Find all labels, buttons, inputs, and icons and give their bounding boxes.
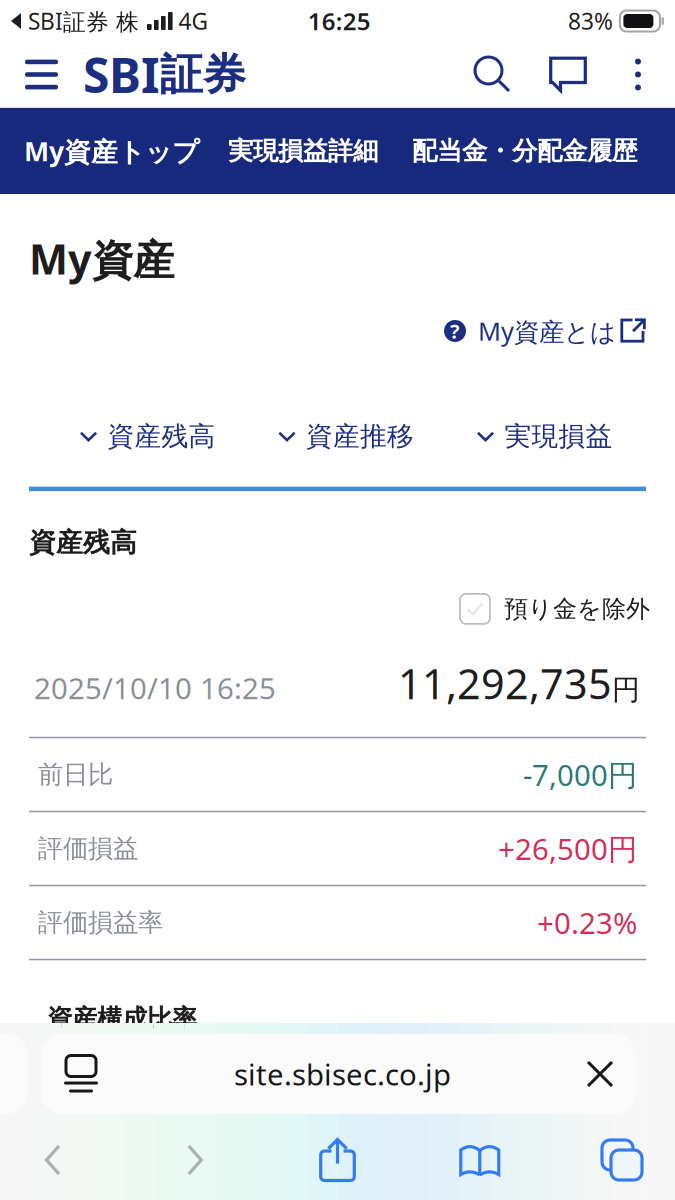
button[interactable]: Chat xyxy=(520,42,617,107)
button[interactable]: 実現損益 xyxy=(476,420,612,453)
staticText: 預り金を除外 xyxy=(504,594,650,624)
staticText: 83% xyxy=(568,6,613,36)
staticText: 配当金・分配金履歴 xyxy=(412,135,637,166)
staticText: 評価損益 xyxy=(38,833,138,864)
button[interactable]: Forward xyxy=(142,1129,248,1191)
button[interactable]: More options xyxy=(617,42,663,107)
button[interactable]: Back xyxy=(0,1129,106,1191)
button[interactable]: 預り金を除外 xyxy=(460,594,650,624)
button[interactable]: 資産残高 xyxy=(79,420,215,453)
button[interactable]: ? xyxy=(444,314,646,348)
staticText: ? xyxy=(450,318,460,344)
staticText: 資産構成比率 xyxy=(47,1003,197,1034)
staticText: 評価損益率 xyxy=(38,907,163,938)
staticText: My資産 xyxy=(29,231,174,286)
staticText: site.sbisec.co.jp xyxy=(234,1054,451,1093)
staticText: 前日比 xyxy=(38,759,113,790)
button[interactable]: 資産推移 xyxy=(278,420,414,453)
button[interactable]: Share xyxy=(284,1129,390,1191)
staticText: 実現損益 xyxy=(504,420,612,453)
button[interactable]: Page settings xyxy=(41,1034,115,1114)
button[interactable]: Bookmarks xyxy=(427,1129,533,1191)
staticText: 実現損益詳細 xyxy=(228,135,378,166)
button[interactable]: Menu xyxy=(12,42,71,107)
button[interactable]: 実現損益詳細 xyxy=(214,108,394,194)
staticText: 16:25 xyxy=(308,5,371,37)
staticText: 2025/10/10 16:25 xyxy=(34,668,276,707)
button[interactable]: SBI Securities home xyxy=(71,42,246,107)
staticText: 11,292,735 xyxy=(398,656,612,711)
staticText: -7,000円 xyxy=(523,755,637,794)
staticText: My資産とは xyxy=(478,314,616,348)
staticText: +0.23% xyxy=(537,903,637,942)
staticText: SBI xyxy=(83,43,160,106)
staticText: 資産推移 xyxy=(306,420,414,453)
staticText: +26,500円 xyxy=(498,829,637,868)
button[interactable]: My資産トップ xyxy=(0,108,214,194)
staticText: SBI証券 株 xyxy=(22,6,139,36)
staticText: 4G xyxy=(173,6,209,36)
button[interactable]: Search xyxy=(465,42,520,107)
staticText: 円 xyxy=(612,673,640,707)
staticText: 資産残高 xyxy=(107,420,215,453)
button[interactable]: Tabs xyxy=(569,1129,675,1191)
staticText: 資産残高 xyxy=(29,526,137,559)
button[interactable]: Stop loading xyxy=(570,1034,636,1114)
button[interactable]: 配当金・分配金履歴 xyxy=(394,108,647,194)
staticText: My資産トップ xyxy=(24,133,199,169)
staticText: 証券 xyxy=(160,48,246,101)
